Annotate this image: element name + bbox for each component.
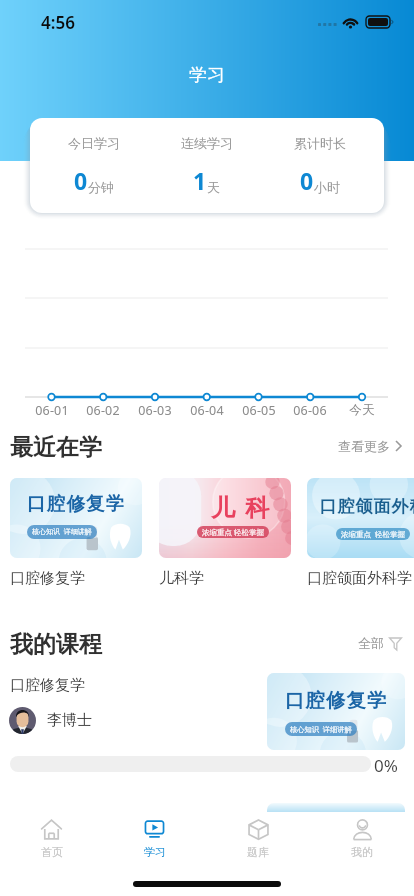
staticText: 学习 [0,64,414,87]
staticText: 儿科学 [159,569,204,588]
staticText: 我的 [351,845,373,859]
button[interactable]: 儿 科 [159,478,291,588]
staticText: 06-04 [185,402,229,419]
button[interactable]: 口腔修复学 [10,478,142,588]
staticText: 题库 [247,845,269,859]
staticText: 全部 [358,635,384,651]
staticText: 今天 [340,402,384,418]
staticText: 查看更多 [338,438,390,454]
button[interactable]: 题库 [206,812,310,859]
staticText: 0 [74,165,88,196]
staticText: 儿 科 [211,490,272,523]
staticText: 0% [374,754,398,777]
button[interactable]: 首页 [0,812,103,859]
staticText: 核心知识 详细讲解 [32,527,92,537]
button[interactable]: 查看更多 [330,436,414,456]
button[interactable]: 口腔修复学 [0,670,414,747]
button[interactable]: 学习 [103,812,206,859]
button[interactable]: 我的 [310,812,414,859]
staticText: 口腔颌面外科学 [307,569,412,588]
button[interactable]: 口腔颌面外科 [307,478,414,588]
staticText: 06-03 [133,402,177,419]
staticText: 我的课程 [10,630,102,659]
staticText: 06-05 [237,402,281,419]
staticText: 口腔修复学 [285,688,388,712]
staticText: 浓缩重点 轻松掌握 [341,529,405,539]
staticText: 06-06 [288,402,332,419]
staticText: 连续学习 [181,135,233,151]
staticText: 口腔颌面外科 [319,496,414,517]
staticText: 累计时长 [294,135,346,151]
button[interactable]: 全部 [350,633,414,653]
staticText: 首页 [41,845,63,859]
staticText: 分钟 [88,179,114,195]
staticText: 口腔修复学 [27,492,126,515]
staticText: 小时 [314,179,340,195]
staticText: 4:56 [41,11,75,34]
staticText: 核心知识 详细讲解 [290,724,352,734]
staticText: 学习 [144,845,166,859]
staticText: 天 [207,179,220,195]
staticText: 今日学习 [68,135,120,151]
staticText: 最近在学 [10,433,102,462]
staticText: 06-02 [81,402,125,419]
staticText: 李博士 [47,711,92,730]
staticText: 1 [193,165,207,196]
staticText: 浓缩重点 轻松掌握 [202,527,264,537]
staticText: 06-01 [30,402,74,419]
staticText: 0 [300,165,314,196]
staticText: 口腔修复学 [10,569,85,588]
staticText: 口腔修复学 [10,676,85,695]
